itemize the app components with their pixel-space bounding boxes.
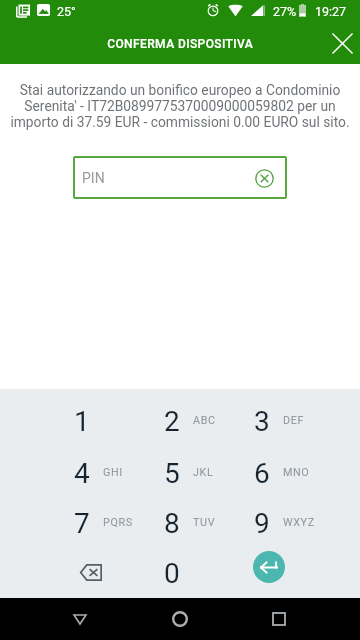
staticText: 27% bbox=[273, 4, 297, 19]
staticText: 1 bbox=[74, 405, 90, 438]
staticText: 2 bbox=[164, 405, 180, 438]
staticText: 19:27 bbox=[315, 4, 347, 19]
button[interactable]: Cancella bbox=[37, 550, 127, 597]
button[interactable]: 2 bbox=[127, 398, 217, 445]
staticText: 4 bbox=[74, 457, 90, 490]
staticText: GHI bbox=[103, 466, 123, 479]
button[interactable]: Chiudi bbox=[324, 25, 360, 61]
staticText: 5 bbox=[164, 457, 180, 490]
staticText: PIN bbox=[82, 170, 105, 186]
button[interactable]: Indietro bbox=[58, 598, 102, 640]
staticText: DEF bbox=[283, 414, 304, 427]
button[interactable]: 1 bbox=[37, 398, 127, 445]
staticText: 9 bbox=[254, 507, 270, 540]
staticText: MNO bbox=[283, 466, 310, 479]
button[interactable]: 4 bbox=[37, 450, 127, 497]
button[interactable]: 7 bbox=[37, 500, 127, 547]
button[interactable]: 6 bbox=[217, 450, 307, 497]
staticText: PQRS bbox=[103, 516, 133, 529]
button[interactable]: Home bbox=[158, 598, 202, 640]
staticText: CONFERMA DISPOSITIVA bbox=[107, 37, 253, 51]
button[interactable]: 3 bbox=[217, 398, 307, 445]
button[interactable]: 0 bbox=[127, 550, 217, 597]
staticText: Stai autorizzando un bonifico europeo a … bbox=[8, 82, 352, 130]
button[interactable]: Recenti bbox=[257, 598, 301, 640]
staticText: TUV bbox=[193, 516, 216, 529]
button[interactable]: 5 bbox=[127, 450, 217, 497]
button[interactable]: Invio bbox=[253, 551, 285, 583]
staticText: 7 bbox=[74, 507, 90, 540]
button[interactable]: Cancella PIN bbox=[253, 167, 275, 189]
button[interactable]: 9 bbox=[217, 500, 307, 547]
staticText: 8 bbox=[164, 507, 180, 540]
staticText: JKL bbox=[193, 466, 214, 479]
staticText: WXYZ bbox=[283, 516, 315, 529]
button[interactable]: 8 bbox=[127, 500, 217, 547]
staticText: 3 bbox=[254, 405, 270, 438]
staticText: 6 bbox=[254, 457, 270, 490]
staticText: 25° bbox=[57, 4, 76, 19]
staticText: ABC bbox=[193, 414, 216, 427]
staticText: 0 bbox=[164, 557, 180, 590]
button[interactable]: PIN bbox=[73, 156, 287, 199]
